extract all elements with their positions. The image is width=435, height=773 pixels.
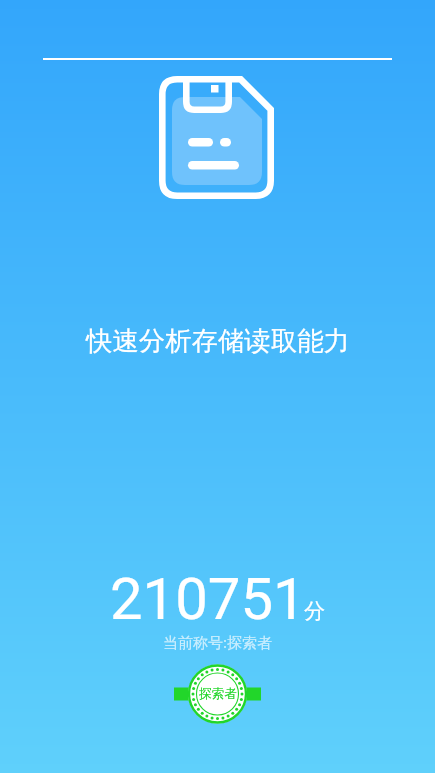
staticText: 210751 bbox=[110, 565, 306, 633]
staticText: 当前称号:探索者 bbox=[163, 632, 273, 652]
staticText: 快速分析存储读取能力 bbox=[86, 325, 350, 358]
button[interactable]: 当前称号 探索者 徽章 bbox=[174, 664, 261, 724]
staticText: 分 bbox=[304, 598, 325, 624]
staticText: 探索者 bbox=[199, 686, 237, 702]
button[interactable]: Storage speed test bbox=[155, 72, 279, 204]
